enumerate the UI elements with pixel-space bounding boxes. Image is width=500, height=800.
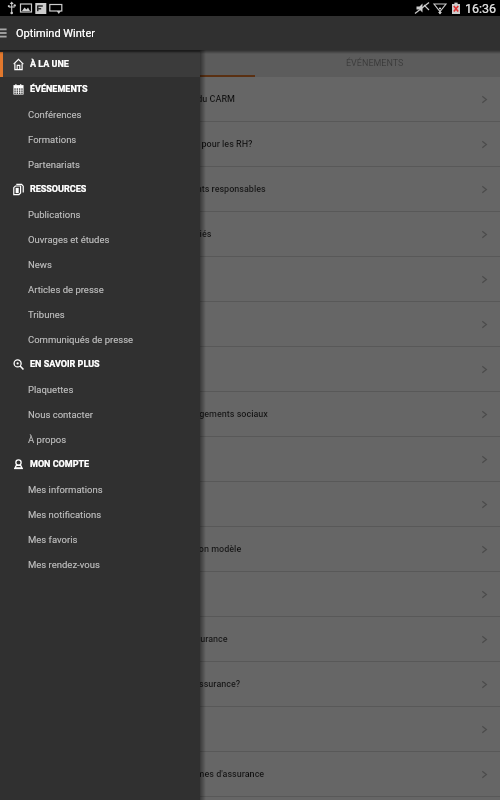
staticText: Formations (28, 134, 77, 145)
staticText: Quelle place pour les nouveaux investiss… (16, 184, 266, 195)
button[interactable]: Communiqués de presse (0, 327, 200, 352)
button[interactable]: Formations (0, 127, 200, 152)
button[interactable]: Quelle place pour les nouveaux investiss… (0, 167, 500, 211)
staticText: Tarification en assurance : comment choi… (16, 544, 242, 555)
button[interactable]: ÉVÉNEMENTS (0, 77, 200, 102)
button[interactable]: EN SAVOIR PLUS (0, 352, 200, 377)
staticText: EN SAVOIR PLUS (30, 359, 100, 370)
button[interactable]: Le digital au service de l'assurance (0, 437, 500, 481)
staticText: Mes notifications (28, 509, 102, 520)
button[interactable]: La retraite, un nouvel enjeu stratégique… (0, 122, 500, 166)
staticText: Partenariats (28, 159, 80, 170)
button[interactable]: Quelles sont les principales et différen… (0, 752, 500, 796)
staticText: 16:36 (465, 1, 497, 16)
button[interactable]: Nous contacter (0, 402, 200, 427)
button[interactable]: News (0, 252, 200, 277)
button[interactable]: À LA UNE (0, 52, 200, 77)
staticText: RESSOURCES (30, 184, 87, 195)
staticText: Mes favoris (28, 534, 78, 545)
button[interactable]: Solvabilité 2 : les enjeux à venir (0, 347, 500, 391)
staticText: Solvabilité 2 : les enjeux à venir (16, 364, 142, 375)
staticText: Conférences (28, 109, 82, 120)
staticText: À propos (28, 434, 67, 445)
staticText: Publications (28, 209, 81, 220)
staticText: Les métiers de l'actuariat et du conseil… (16, 634, 228, 645)
button[interactable]: Quels sont les principaux risques assura… (0, 707, 500, 751)
button[interactable]: La gestion actif-passif et le pilotage d… (0, 392, 500, 436)
staticText: Tribunes (28, 309, 65, 320)
staticText: Plaquettes (28, 384, 74, 395)
button[interactable]: Plaquettes (0, 377, 200, 402)
button[interactable]: Qu'est-ce qu'un contrat collectif de gro… (0, 662, 500, 706)
button[interactable]: Les métiers de l'actuariat et du conseil… (0, 617, 500, 661)
staticText: MON COMPTE (30, 459, 90, 470)
button[interactable]: MON COMPTE (0, 452, 200, 477)
button[interactable]: RESSOURCES (0, 177, 200, 202)
staticText: Nous contacter (28, 409, 93, 420)
staticText: Ouvrages et études (28, 234, 110, 245)
button[interactable]: Open navigation drawer (0, 25, 16, 41)
staticText: News (28, 259, 52, 270)
staticText: Mes informations (28, 484, 103, 495)
button[interactable]: Les risques psychosociaux et les jeunes … (0, 212, 500, 256)
staticText: ÉVÉNEMENTS (346, 58, 404, 69)
button[interactable]: Mes favoris (0, 527, 200, 552)
button[interactable]: ÉVÉNEMENTS (250, 50, 500, 77)
button[interactable]: Mes informations (0, 477, 200, 502)
staticText: Communiqués de presse (28, 334, 134, 345)
button[interactable]: À LA UNE (0, 50, 250, 77)
button[interactable]: Actuariat et gestion globale des risques (0, 302, 500, 346)
button[interactable]: Assemblée générale ordinaire annuelle 20… (0, 77, 500, 121)
button[interactable]: À propos (0, 427, 200, 452)
staticText: La gestion actif-passif et le pilotage d… (16, 409, 268, 420)
button[interactable]: Big data et nouveaux modèles (0, 482, 500, 526)
button[interactable]: Tribunes (0, 302, 200, 327)
staticText: La retraite, un nouvel enjeu stratégique… (16, 139, 253, 150)
staticText: Optimind Winter (16, 27, 96, 40)
button[interactable]: Publications (0, 202, 200, 227)
button[interactable]: Articles de presse (0, 277, 200, 302)
button[interactable]: Mes rendez-vous (0, 552, 200, 577)
button[interactable]: Tarification en assurance : comment choi… (0, 527, 500, 571)
staticText: Assemblée générale ordinaire annuelle 20… (16, 94, 235, 105)
button[interactable]: Partenariats (0, 152, 200, 177)
staticText: ÉVÉNEMENTS (30, 84, 88, 95)
staticText: Quelles sont les principales et différen… (16, 769, 265, 780)
staticText: À LA UNE (30, 59, 69, 70)
button[interactable]: Les normes comptables IFRS (0, 572, 500, 616)
staticText: Le digital au service de l'assurance (16, 454, 156, 465)
staticText: Articles de presse (28, 284, 104, 295)
button[interactable]: Ouvrages et études (0, 227, 200, 252)
button[interactable]: Mes notifications (0, 502, 200, 527)
staticText: Mes rendez-vous (28, 559, 100, 570)
staticText: Qu'est-ce qu'un contrat collectif de gro… (16, 679, 241, 690)
staticText: Les risques psychosociaux et les jeunes … (16, 229, 212, 240)
button[interactable]: Les nouveaux défis de la protection soci… (0, 257, 500, 301)
button[interactable]: Conférences (0, 102, 200, 127)
